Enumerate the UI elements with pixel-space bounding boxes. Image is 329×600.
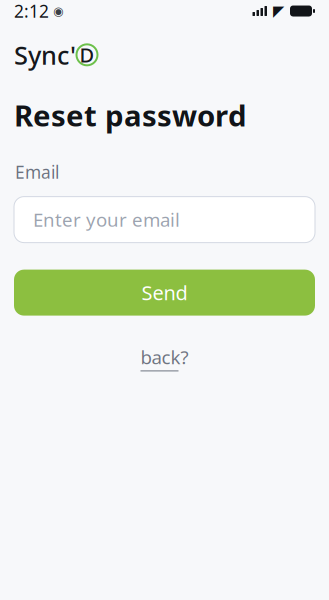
staticText: Enter your email — [33, 207, 180, 232]
button[interactable]: Send — [14, 270, 315, 316]
button[interactable]: back? — [140, 345, 188, 371]
staticText: ◉ — [49, 4, 63, 18]
staticText: Send — [141, 279, 187, 306]
button[interactable]: Enter your email — [14, 197, 315, 243]
staticText: 2:12 — [14, 0, 49, 22]
staticText: ◤ — [273, 3, 284, 19]
staticText: Reset password — [14, 96, 247, 135]
staticText: D — [79, 41, 94, 68]
staticText: Sync' — [14, 38, 76, 72]
staticText: back? — [140, 345, 188, 369]
staticText: Email — [15, 161, 59, 184]
